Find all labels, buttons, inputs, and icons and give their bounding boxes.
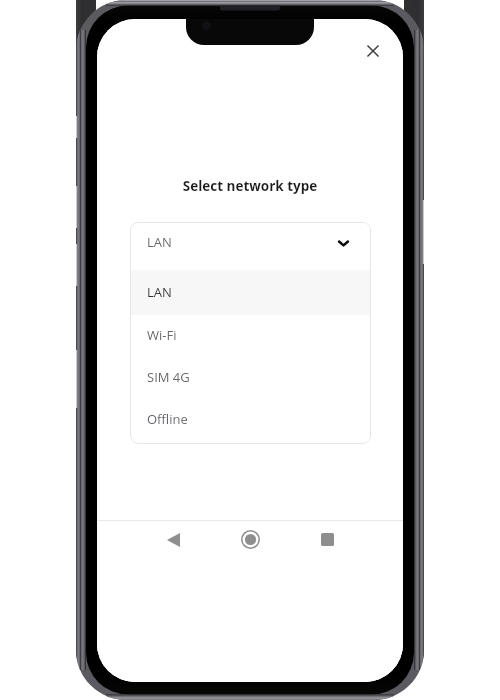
button[interactable]: Back — [155, 521, 191, 557]
button[interactable]: SIM 4G — [130, 357, 371, 399]
button[interactable]: Wi-Fi — [130, 315, 371, 357]
staticText: LAN — [147, 233, 172, 251]
staticText: SIM 4G — [147, 368, 190, 386]
staticText: LAN — [147, 283, 172, 301]
staticText: Select network type — [97, 177, 403, 195]
button[interactable]: LAN — [130, 270, 371, 315]
staticText: Offline — [147, 410, 188, 428]
button[interactable]: Offline — [130, 399, 371, 441]
button[interactable]: LAN — [130, 222, 371, 270]
button[interactable]: Close — [357, 35, 389, 67]
staticText: Wi-Fi — [147, 326, 177, 344]
button[interactable]: Home — [232, 521, 268, 557]
button[interactable]: Recents — [309, 521, 345, 557]
